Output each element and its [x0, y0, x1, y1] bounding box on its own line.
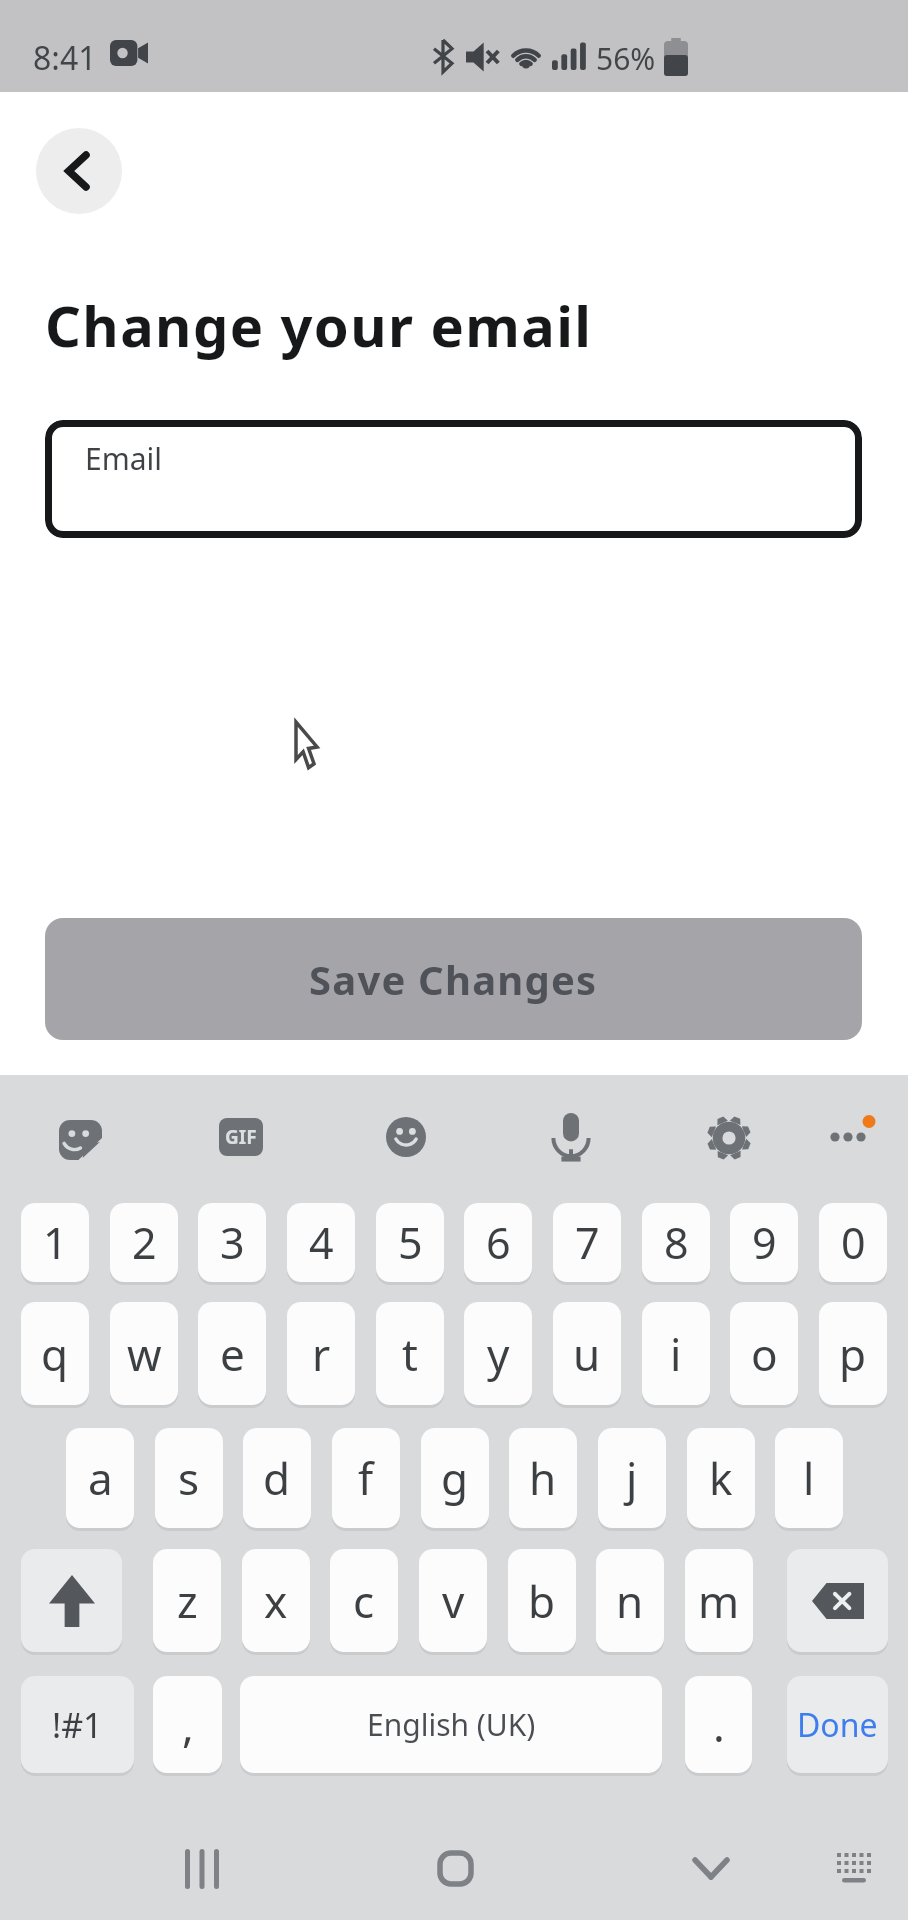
- staticText: r: [312, 1324, 331, 1384]
- staticText: i: [670, 1324, 682, 1384]
- button[interactable]: ,: [153, 1676, 222, 1773]
- button[interactable]: [826, 1115, 878, 1161]
- button[interactable]: !#1: [21, 1676, 134, 1773]
- button[interactable]: f: [332, 1428, 400, 1528]
- staticText: g: [441, 1448, 469, 1508]
- button[interactable]: p: [819, 1302, 887, 1405]
- button[interactable]: Email: [45, 420, 862, 538]
- button[interactable]: [185, 1849, 219, 1889]
- button[interactable]: q: [21, 1302, 89, 1405]
- button[interactable]: j: [598, 1428, 666, 1528]
- button[interactable]: r: [287, 1302, 355, 1405]
- button[interactable]: 6: [464, 1203, 532, 1282]
- button[interactable]: 5: [376, 1203, 444, 1282]
- button[interactable]: [36, 128, 122, 214]
- button[interactable]: u: [553, 1302, 621, 1405]
- staticText: n: [616, 1571, 644, 1631]
- button[interactable]: .: [685, 1676, 752, 1773]
- staticText: v: [442, 1571, 465, 1631]
- button[interactable]: 1: [21, 1203, 89, 1282]
- staticText: 9: [752, 1213, 777, 1272]
- button[interactable]: [551, 1113, 591, 1162]
- button[interactable]: z: [153, 1549, 221, 1652]
- button[interactable]: o: [730, 1302, 798, 1405]
- staticText: s: [178, 1448, 200, 1508]
- staticText: Save Changes: [309, 952, 598, 1006]
- staticText: h: [529, 1448, 557, 1508]
- staticText: t: [402, 1324, 418, 1384]
- staticText: p: [839, 1324, 867, 1384]
- staticText: !#1: [52, 1702, 103, 1748]
- staticText: y: [487, 1324, 510, 1384]
- staticText: ,: [182, 1695, 194, 1755]
- button[interactable]: m: [685, 1549, 753, 1652]
- button[interactable]: 4: [287, 1203, 355, 1282]
- button[interactable]: v: [419, 1549, 487, 1652]
- button[interactable]: k: [687, 1428, 755, 1528]
- button[interactable]: g: [421, 1428, 489, 1528]
- staticText: z: [177, 1571, 198, 1631]
- staticText: 7: [575, 1213, 600, 1272]
- staticText: 5: [398, 1213, 423, 1272]
- staticText: 2: [132, 1213, 157, 1272]
- staticText: e: [220, 1324, 245, 1384]
- button[interactable]: Done: [787, 1676, 888, 1773]
- button[interactable]: x: [242, 1549, 310, 1652]
- button[interactable]: 3: [198, 1203, 266, 1282]
- staticText: a: [88, 1448, 113, 1508]
- button[interactable]: h: [509, 1428, 577, 1528]
- button[interactable]: 7: [553, 1203, 621, 1282]
- button[interactable]: [706, 1116, 752, 1160]
- staticText: j: [626, 1448, 638, 1508]
- staticText: b: [528, 1571, 556, 1631]
- button[interactable]: e: [198, 1302, 266, 1405]
- button[interactable]: [693, 1858, 729, 1879]
- button[interactable]: [59, 1120, 102, 1160]
- button[interactable]: [837, 1853, 871, 1883]
- staticText: 3: [220, 1213, 245, 1272]
- staticText: o: [751, 1324, 778, 1384]
- staticText: m: [698, 1571, 740, 1631]
- button[interactable]: 9: [730, 1203, 798, 1282]
- staticText: 0: [841, 1213, 866, 1272]
- button[interactable]: GIF: [219, 1118, 263, 1156]
- button[interactable]: Save Changes: [45, 918, 862, 1040]
- button[interactable]: c: [330, 1549, 398, 1652]
- button[interactable]: [787, 1549, 888, 1652]
- staticText: u: [573, 1324, 601, 1384]
- staticText: GIF: [225, 1124, 257, 1150]
- staticText: q: [41, 1324, 69, 1384]
- button[interactable]: t: [376, 1302, 444, 1405]
- staticText: c: [353, 1571, 375, 1631]
- button[interactable]: b: [508, 1549, 576, 1652]
- staticText: Done: [797, 1703, 878, 1747]
- button[interactable]: i: [642, 1302, 710, 1405]
- staticText: 56%: [596, 38, 656, 79]
- staticText: k: [709, 1448, 733, 1508]
- button[interactable]: d: [243, 1428, 311, 1528]
- staticText: l: [803, 1448, 815, 1508]
- staticText: Change your email: [45, 287, 593, 363]
- staticText: 6: [486, 1213, 511, 1272]
- button[interactable]: [386, 1117, 426, 1157]
- staticText: 8: [664, 1213, 689, 1272]
- button[interactable]: s: [155, 1428, 223, 1528]
- staticText: x: [264, 1571, 288, 1631]
- button[interactable]: [21, 1549, 122, 1652]
- button[interactable]: y: [464, 1302, 532, 1405]
- button[interactable]: [437, 1850, 474, 1887]
- staticText: 1: [43, 1213, 68, 1272]
- staticText: 4: [309, 1213, 334, 1272]
- button[interactable]: n: [596, 1549, 664, 1652]
- staticText: 8:41: [33, 36, 97, 80]
- button[interactable]: 8: [642, 1203, 710, 1282]
- button[interactable]: a: [66, 1428, 134, 1528]
- button[interactable]: English (UK): [240, 1676, 662, 1773]
- button[interactable]: 0: [819, 1203, 887, 1282]
- staticText: Email: [85, 438, 163, 479]
- staticText: f: [358, 1448, 374, 1508]
- button[interactable]: 2: [110, 1203, 178, 1282]
- button[interactable]: l: [775, 1428, 843, 1528]
- button[interactable]: w: [110, 1302, 178, 1405]
- staticText: English (UK): [367, 1704, 536, 1745]
